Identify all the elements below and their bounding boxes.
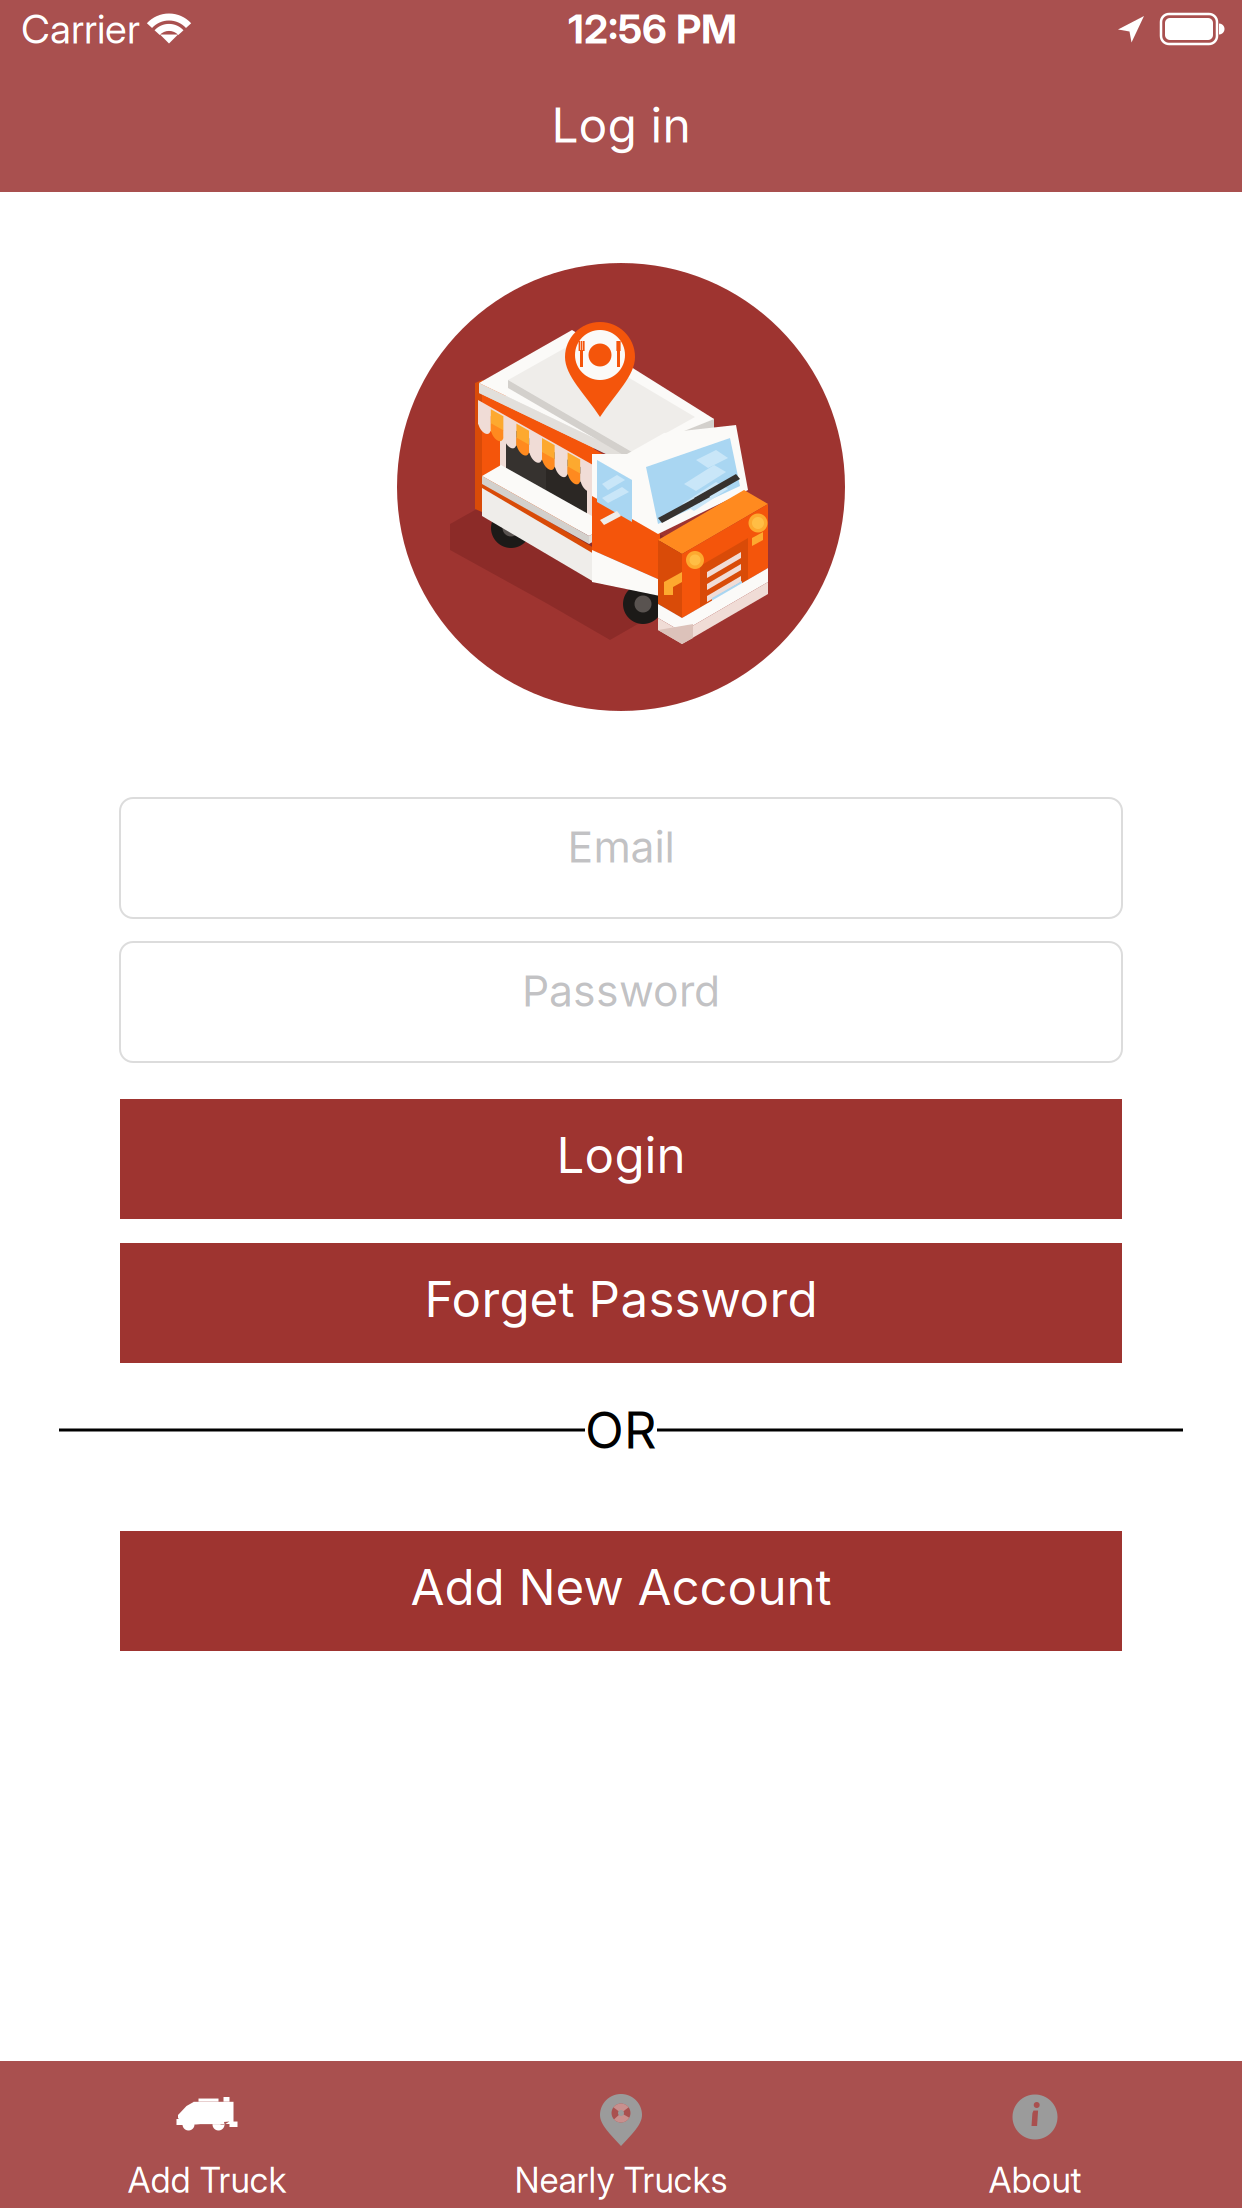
button[interactable]: Forget Password xyxy=(120,1243,1122,1363)
staticText: Add Truck xyxy=(127,2159,286,2201)
staticText: About xyxy=(988,2159,1081,2201)
staticText: Carrier xyxy=(21,5,140,53)
button[interactable]: Add Truck xyxy=(0,2061,414,2208)
staticText: Login xyxy=(556,1125,685,1185)
staticText: Forget Password xyxy=(424,1269,817,1329)
staticText: Email xyxy=(567,821,674,873)
button[interactable]: About xyxy=(828,2061,1242,2208)
button[interactable]: Nearly Trucks xyxy=(414,2061,828,2208)
staticText: 12:56 PM xyxy=(568,5,737,53)
staticText: OR xyxy=(585,1399,657,1461)
button[interactable]: Add New Account xyxy=(120,1531,1122,1651)
staticText: Password xyxy=(522,965,720,1017)
staticText: Nearly Trucks xyxy=(514,2159,727,2201)
staticText: Add New Account xyxy=(410,1557,831,1617)
staticText: Log in xyxy=(551,96,690,154)
button[interactable]: Login xyxy=(120,1099,1122,1219)
